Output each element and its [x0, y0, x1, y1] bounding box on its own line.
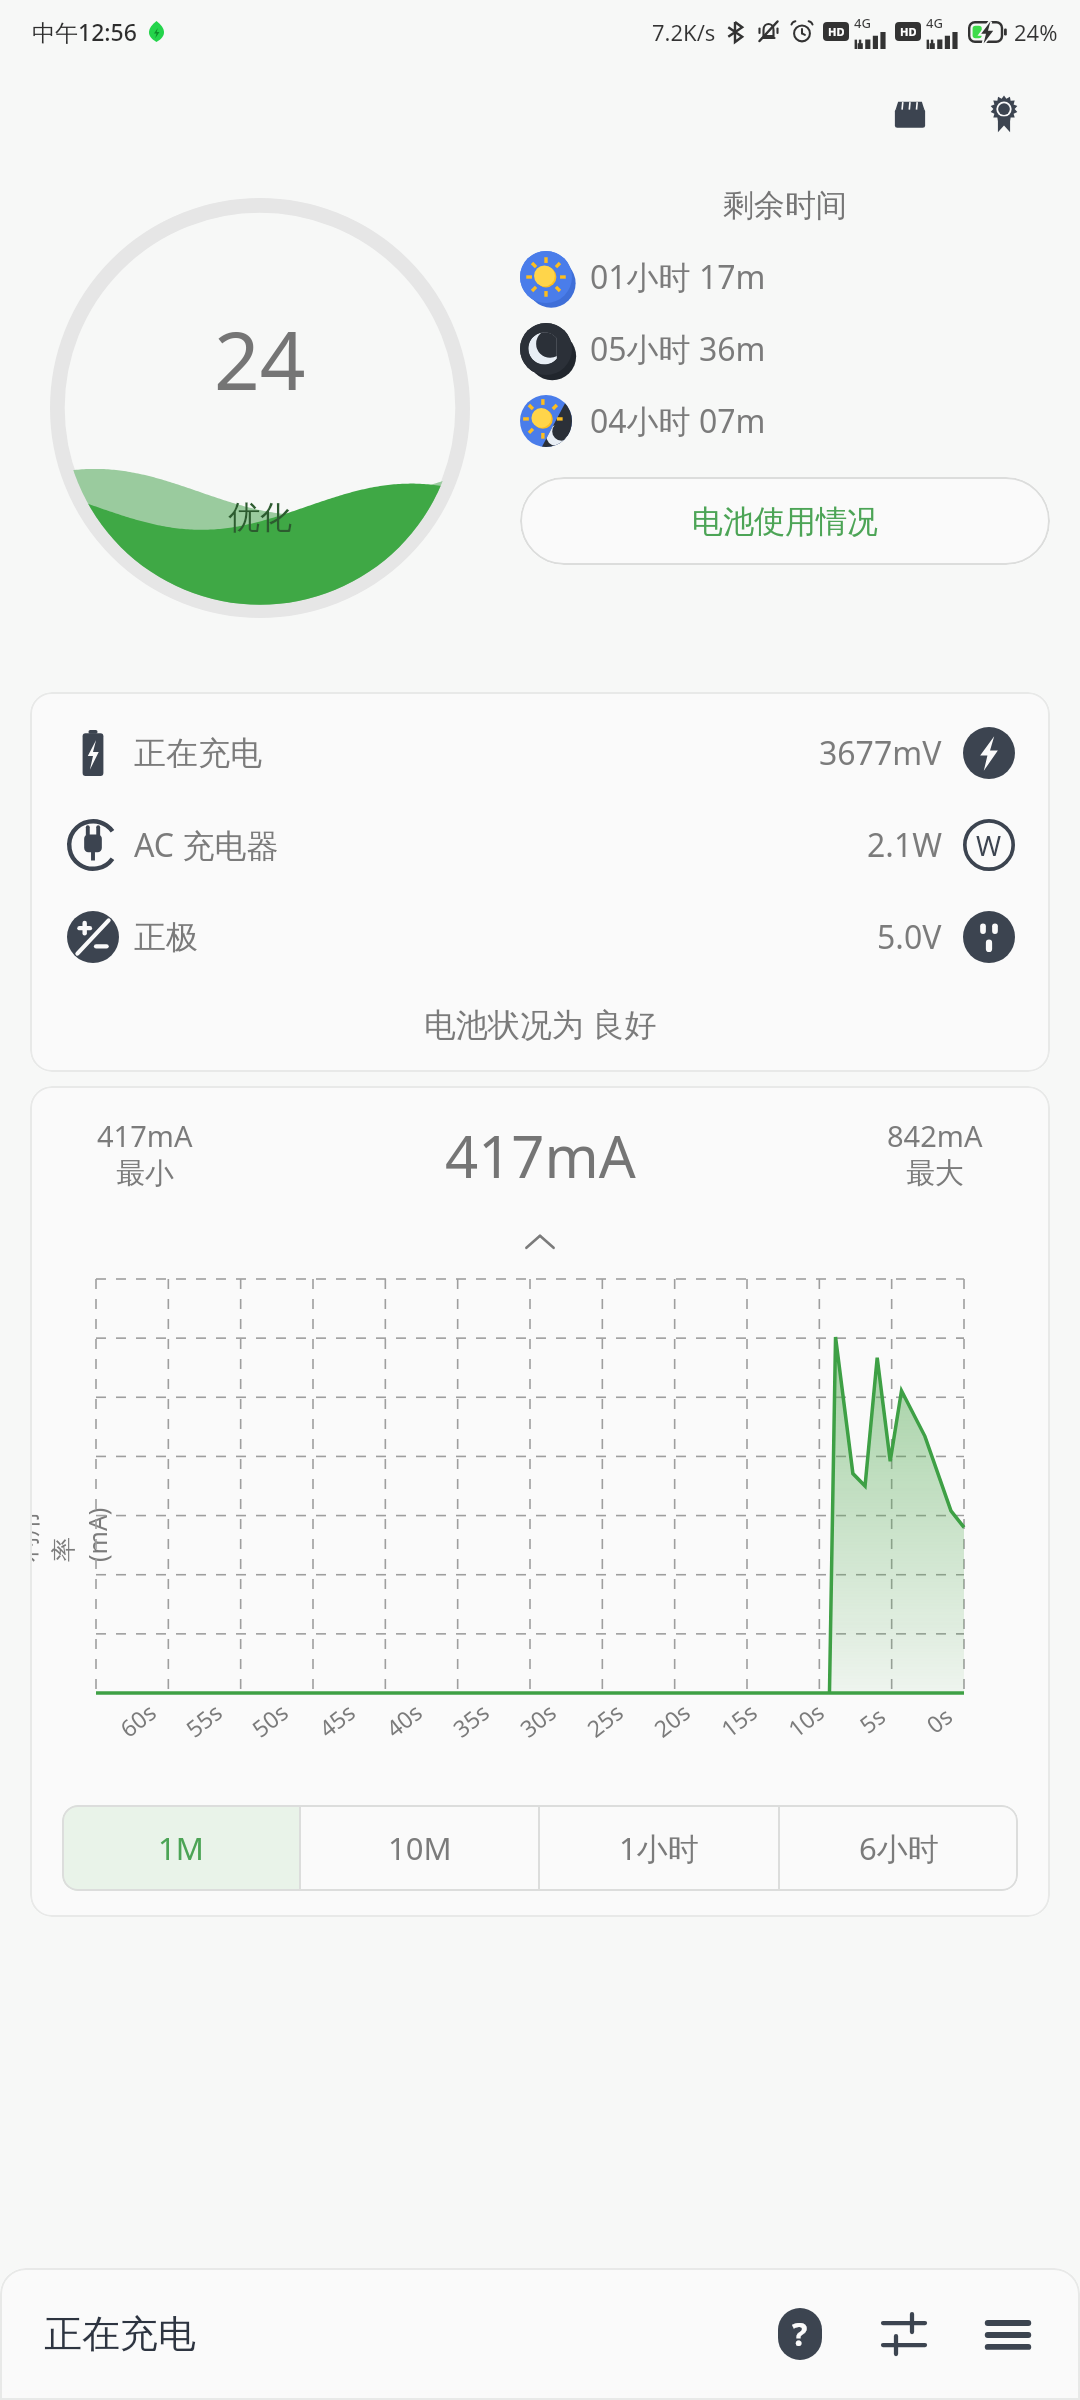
- staticText: 中午12:56: [32, 16, 137, 47]
- staticText: 04小时 07m: [590, 399, 766, 443]
- staticText: 4G: [926, 14, 943, 32]
- staticText: 40s: [379, 1696, 428, 1743]
- staticText: 正在充电: [44, 2310, 196, 2358]
- button[interactable]: 6小时: [780, 1805, 1018, 1891]
- staticText: ?: [792, 2312, 808, 2356]
- staticText: HD: [900, 24, 917, 39]
- staticText: 优化: [228, 497, 292, 537]
- staticText: 45s: [312, 1696, 361, 1743]
- button[interactable]: 正极: [30, 902, 1050, 972]
- staticText: 01小时 17m: [590, 255, 766, 299]
- staticText: 正在充电: [134, 733, 262, 773]
- staticText: 2.1W: [867, 823, 942, 867]
- staticText: HD: [828, 24, 845, 39]
- staticText: 5.0V: [877, 915, 942, 959]
- button[interactable]: 10M: [301, 1805, 538, 1891]
- button[interactable]: 正在充电: [30, 718, 1050, 788]
- button[interactable]: Awards: [976, 86, 1032, 142]
- button[interactable]: Collapse: [30, 1217, 1050, 1269]
- staticText: 0s: [920, 1700, 958, 1739]
- staticText: 24%: [1014, 17, 1058, 47]
- staticText: 15s: [714, 1696, 763, 1743]
- staticText: 1M: [158, 1827, 204, 1869]
- staticText: AC 充电器: [134, 823, 279, 867]
- staticText: 10s: [781, 1696, 830, 1743]
- button[interactable]: Settings: [862, 2292, 946, 2376]
- staticText: 30s: [513, 1696, 562, 1743]
- staticText: 最小: [116, 1155, 174, 1192]
- staticText: 利用率 (mA): [30, 1496, 114, 1562]
- staticText: 7.2K/s: [652, 17, 716, 47]
- staticText: 1小时: [619, 1827, 699, 1869]
- button[interactable]: 1小时: [540, 1805, 778, 1891]
- staticText: 417mA: [445, 1116, 636, 1195]
- staticText: 24: [214, 304, 306, 413]
- button[interactable]: Help: [758, 2292, 842, 2376]
- staticText: 10M: [388, 1827, 452, 1869]
- staticText: 电池使用情况: [692, 502, 878, 541]
- staticText: 正极: [134, 917, 198, 957]
- staticText: 4G: [854, 14, 871, 32]
- staticText: 50s: [245, 1696, 294, 1743]
- staticText: 55s: [179, 1696, 228, 1743]
- staticText: 60s: [113, 1696, 162, 1743]
- staticText: 最大: [906, 1155, 964, 1192]
- staticText: 20s: [647, 1696, 696, 1743]
- staticText: 3677mV: [819, 731, 942, 775]
- staticText: W: [976, 827, 1002, 864]
- staticText: 25s: [580, 1696, 629, 1743]
- button[interactable]: Menu: [966, 2292, 1050, 2376]
- button[interactable]: 电池使用情况: [520, 477, 1050, 565]
- staticText: 剩余时间: [723, 186, 847, 225]
- staticText: 05小时 36m: [590, 327, 766, 371]
- staticText: 电池状况为 良好: [30, 1002, 1050, 1046]
- staticText: 35s: [446, 1696, 495, 1743]
- button[interactable]: AC 充电器: [30, 810, 1050, 880]
- button[interactable]: Store: [882, 86, 938, 142]
- staticText: 842mA: [887, 1116, 983, 1155]
- staticText: 5s: [853, 1700, 891, 1739]
- staticText: 6小时: [859, 1827, 939, 1869]
- staticText: 417mA: [97, 1116, 193, 1155]
- button[interactable]: 1M: [62, 1805, 299, 1891]
